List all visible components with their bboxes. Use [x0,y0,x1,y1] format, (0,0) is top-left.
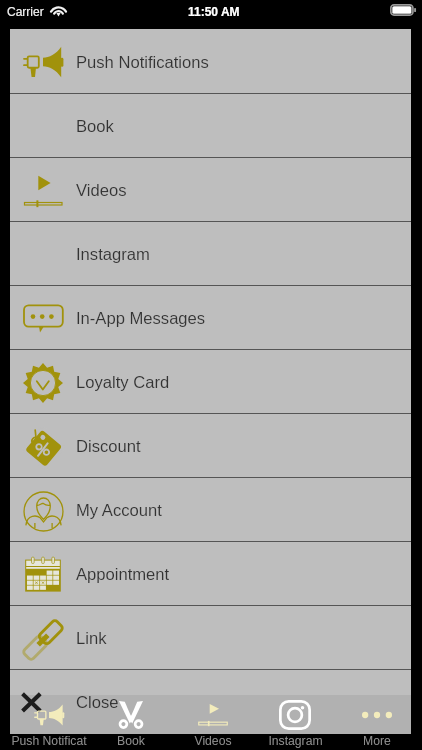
button[interactable]: In-App Messages [10,285,411,349]
staticText: Push Notifications [76,53,209,72]
staticText: Discount [76,437,141,456]
staticText: 11:50 AM [188,5,240,18]
staticText: Carrier [7,5,44,18]
button[interactable]: Link [10,605,411,669]
staticText: Loyalty Card [76,373,170,392]
button[interactable]: Book [10,93,411,157]
staticText: More [363,734,391,748]
staticText: Push Notificat [11,734,87,748]
staticText: In-App Messages [76,309,206,328]
button[interactable]: Videos [10,157,411,221]
button[interactable]: Loyalty Card [10,349,411,413]
button[interactable]: Instagram [254,695,336,750]
button[interactable]: Push Notifications [10,29,411,93]
staticText: Instagram [76,245,150,264]
staticText: Videos [76,181,127,200]
staticText: My Account [76,501,162,520]
staticText: Book [117,734,145,748]
staticText: Link [76,629,107,648]
staticText: Videos [194,734,232,748]
button[interactable]: Close [10,669,411,733]
button[interactable]: Discount [10,413,411,477]
button[interactable]: More [336,695,418,750]
staticText: Appointment [76,565,170,584]
staticText: Instagram [268,734,323,748]
button[interactable]: Videos [172,695,254,750]
button[interactable]: My Account [10,477,411,541]
button[interactable]: Book [90,695,172,750]
staticText: Close [76,693,119,712]
button[interactable]: Appointment [10,541,411,605]
button[interactable]: Push Notificat [7,695,90,750]
staticText: Book [76,117,114,136]
button[interactable]: Instagram [10,221,411,285]
